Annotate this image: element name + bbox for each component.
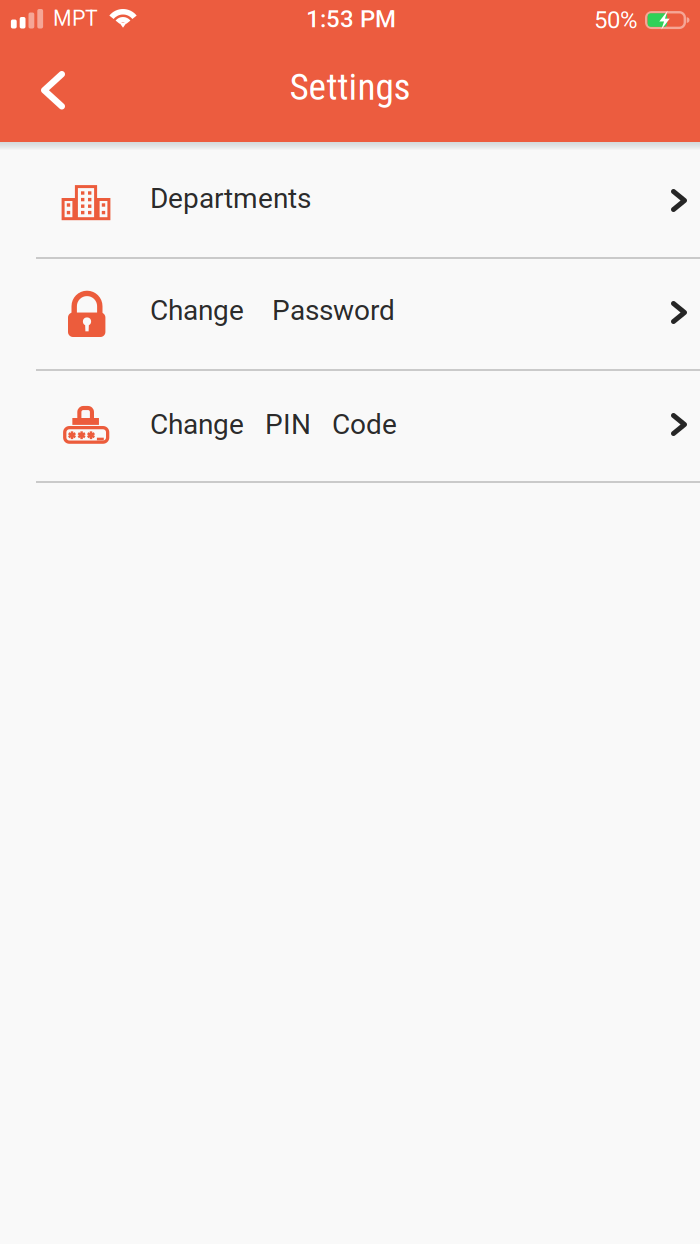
staticText: Departments (150, 182, 311, 215)
staticText: 50% (594, 6, 638, 34)
staticText: Change PIN Code (150, 408, 397, 441)
button[interactable]: Back (13, 40, 93, 112)
button[interactable]: Change PIN Code (0, 371, 700, 483)
staticText: 1:53 PM (306, 5, 396, 33)
staticText: Settings (289, 65, 410, 109)
staticText: MPT (53, 6, 98, 31)
staticText: Change Password (150, 294, 395, 327)
button[interactable]: Departments (0, 142, 700, 259)
button[interactable]: Change Password (0, 259, 700, 371)
